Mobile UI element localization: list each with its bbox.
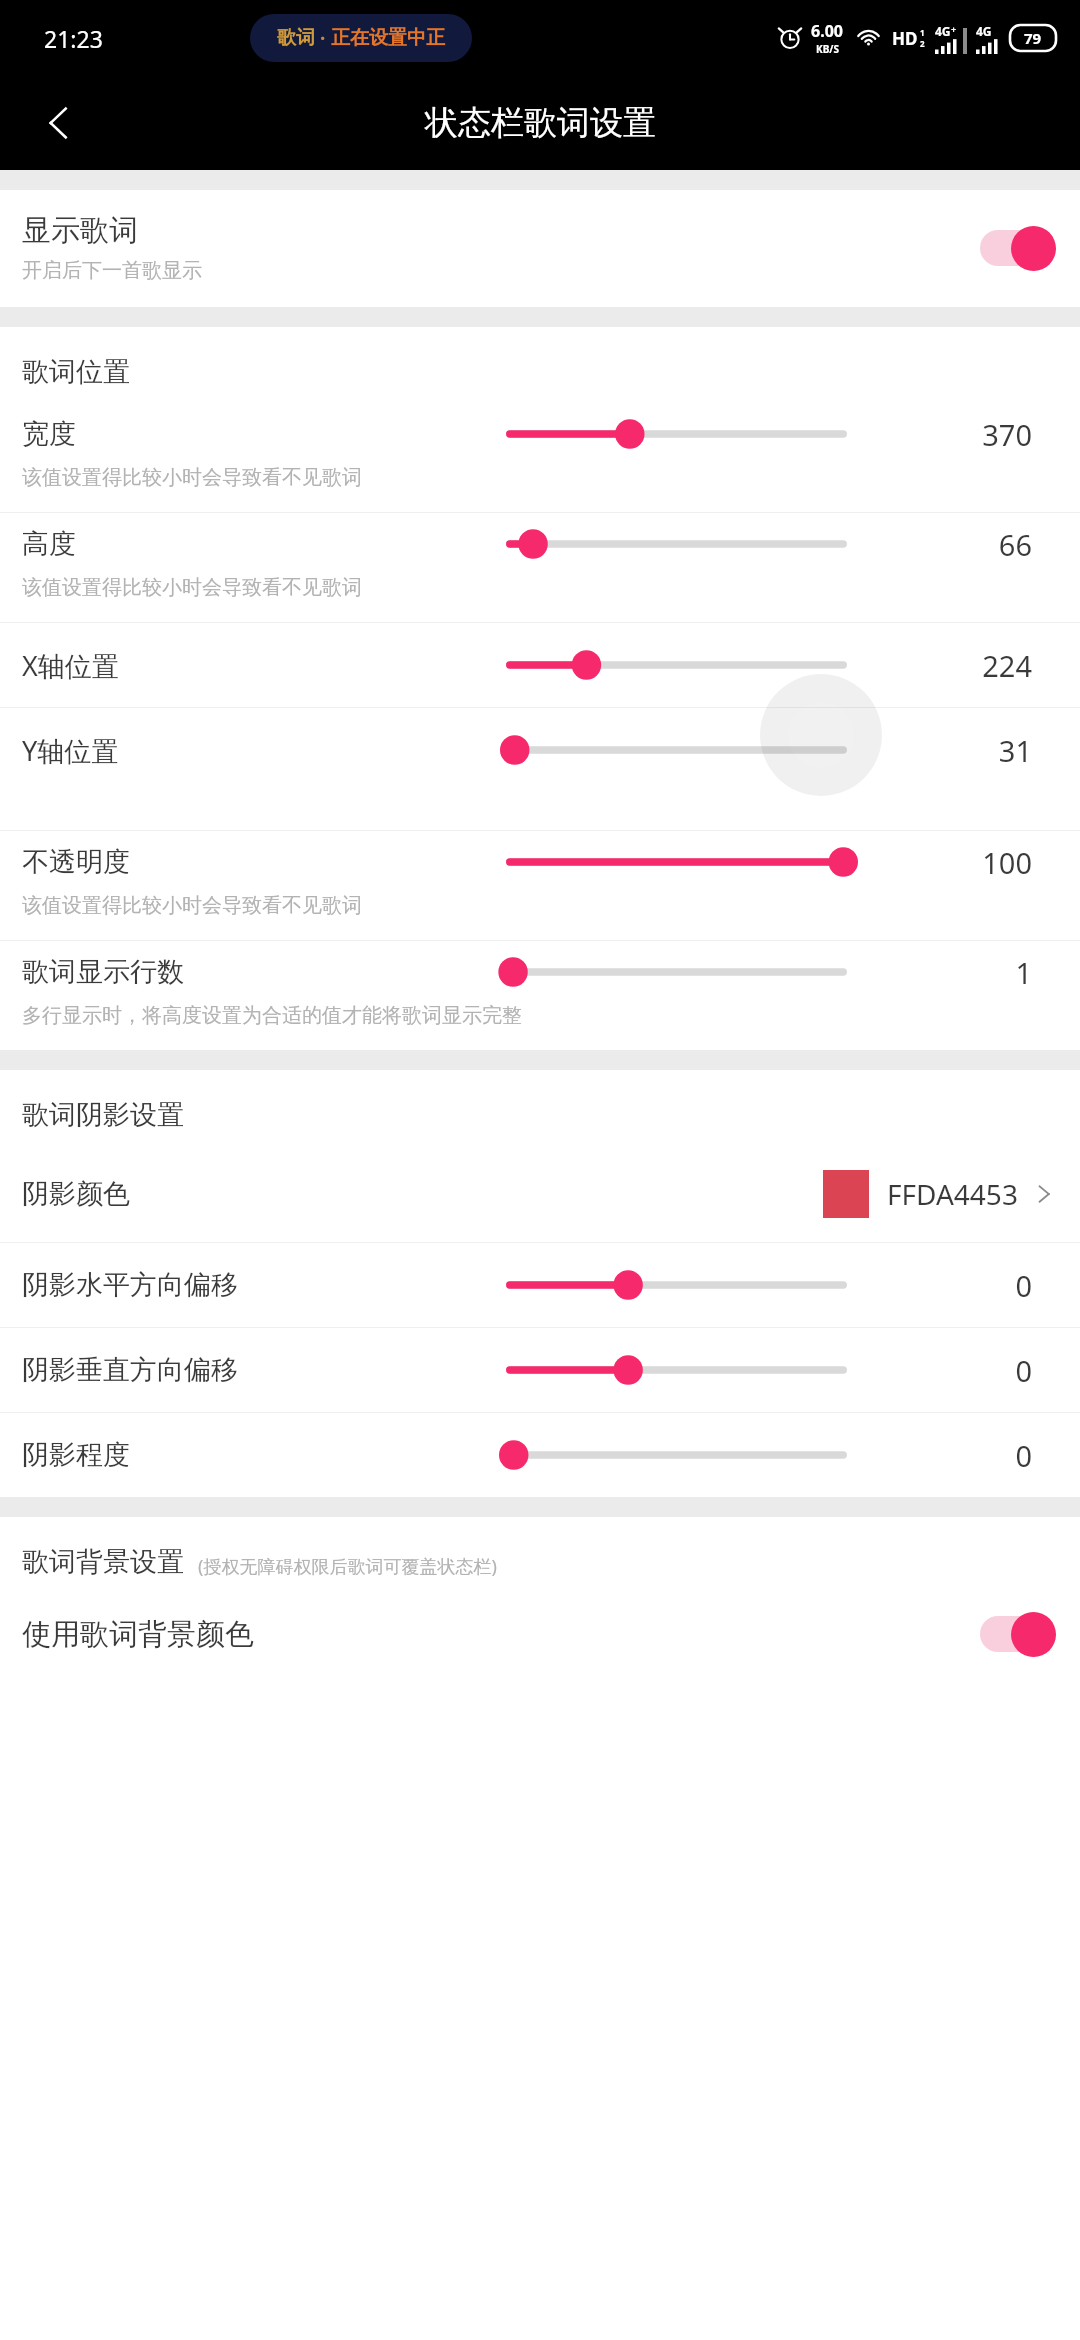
staticText: 该值设置得比较小时会导致看不见歌词 (22, 893, 362, 918)
staticText: 21:23 (44, 23, 103, 54)
staticText: Y轴位置 (22, 732, 119, 769)
button[interactable]: X轴位置 (0, 623, 1080, 707)
staticText: 歌词 (277, 26, 315, 50)
button[interactable]: 歌词显示行数 (0, 941, 1080, 1050)
staticText: 6.00 (811, 20, 843, 42)
button[interactable]: Back (20, 83, 100, 163)
button[interactable]: 阴影颜色 (0, 1146, 1080, 1242)
button[interactable]: Y轴位置 (0, 708, 1080, 830)
button[interactable]: 阴影水平方向偏移 (0, 1243, 1080, 1327)
staticText: 4G (976, 23, 992, 39)
staticText: 多行显示时，将高度设置为合适的值才能将歌词显示完整 (22, 1003, 522, 1028)
staticText: 66 (882, 525, 1032, 564)
staticText: 该值设置得比较小时会导致看不见歌词 (22, 465, 362, 490)
staticText: 100 (882, 843, 1032, 882)
staticText: 31 (882, 731, 1032, 770)
staticText: KB/S (816, 42, 839, 56)
staticText: FFDA4453 (887, 1175, 1018, 1213)
staticText: 歌词背景设置 (22, 1545, 184, 1579)
staticText: 显示歌词 (22, 212, 138, 249)
button[interactable]: 使用歌词背景颜色 (0, 1593, 1080, 1677)
button[interactable]: Lyric notification (250, 14, 472, 62)
staticText: 开启后下一首歌显示 (22, 258, 202, 283)
staticText: 宽度 (22, 417, 76, 451)
staticText: 使用歌词背景颜色 (22, 1616, 978, 1653)
staticText: HD (892, 27, 918, 50)
staticText: 4G (935, 23, 951, 39)
button[interactable]: 显示歌词 (0, 190, 1080, 307)
staticText: 该值设置得比较小时会导致看不见歌词 (22, 575, 362, 600)
staticText: 阴影垂直方向偏移 (22, 1353, 238, 1387)
staticText: 阴影颜色 (22, 1177, 823, 1211)
button[interactable]: 高度 (0, 513, 1080, 622)
button[interactable]: 不透明度 (0, 831, 1080, 940)
staticText: X轴位置 (22, 647, 119, 684)
staticText: · (315, 25, 331, 51)
staticText: 79 (1024, 28, 1042, 48)
staticText: 高度 (22, 527, 76, 561)
staticText: + (951, 23, 957, 35)
staticText: 0 (882, 1351, 1032, 1390)
staticText: 不透明度 (22, 845, 130, 879)
button[interactable]: Toggle (978, 225, 1056, 271)
staticText: 224 (882, 646, 1032, 685)
staticText: 阴影水平方向偏移 (22, 1268, 238, 1302)
button[interactable]: Toggle (978, 1611, 1056, 1657)
staticText: 2 (920, 38, 925, 49)
staticText: 1 (882, 953, 1032, 992)
staticText: 正在设置中正 (331, 26, 445, 50)
button[interactable]: 阴影垂直方向偏移 (0, 1328, 1080, 1412)
staticText: 0 (882, 1266, 1032, 1305)
button[interactable]: 宽度 (0, 403, 1080, 512)
staticText: 歌词阴影设置 (22, 1098, 1080, 1132)
staticText: (授权无障碍权限后歌词可覆盖状态栏) (198, 1554, 497, 1579)
staticText: 0 (882, 1436, 1032, 1475)
staticText: 歌词显示行数 (22, 955, 184, 989)
staticText: 370 (882, 415, 1032, 454)
button[interactable]: 阴影程度 (0, 1413, 1080, 1497)
staticText: 阴影程度 (22, 1438, 130, 1472)
staticText: 歌词位置 (22, 355, 1080, 389)
staticText: 1 (920, 27, 925, 38)
staticText: 状态栏歌词设置 (425, 102, 656, 144)
